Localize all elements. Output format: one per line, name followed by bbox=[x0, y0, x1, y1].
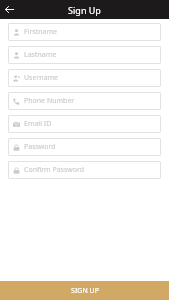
button[interactable]: Phone Number bbox=[8, 92, 161, 110]
staticText: Email ID bbox=[24, 119, 52, 129]
staticText: Password bbox=[24, 142, 56, 152]
button[interactable]: Lastname bbox=[8, 46, 161, 64]
staticText: Lastname bbox=[24, 50, 57, 60]
staticText: Phone Number bbox=[24, 96, 75, 106]
button[interactable]: Username bbox=[8, 69, 161, 87]
button[interactable]: Confirm Password bbox=[8, 161, 161, 179]
button[interactable]: SIGN UP bbox=[0, 281, 169, 300]
staticText: Username bbox=[24, 73, 59, 83]
button[interactable]: Password bbox=[8, 138, 161, 156]
staticText: Confirm Password bbox=[24, 165, 85, 175]
button[interactable]: Email ID bbox=[8, 115, 161, 133]
staticText: Firstname bbox=[24, 27, 57, 37]
staticText: Sign Up bbox=[68, 4, 101, 16]
button[interactable]: Back bbox=[0, 0, 19, 19]
button[interactable]: Firstname bbox=[8, 23, 161, 41]
staticText: SIGN UP bbox=[71, 286, 99, 296]
